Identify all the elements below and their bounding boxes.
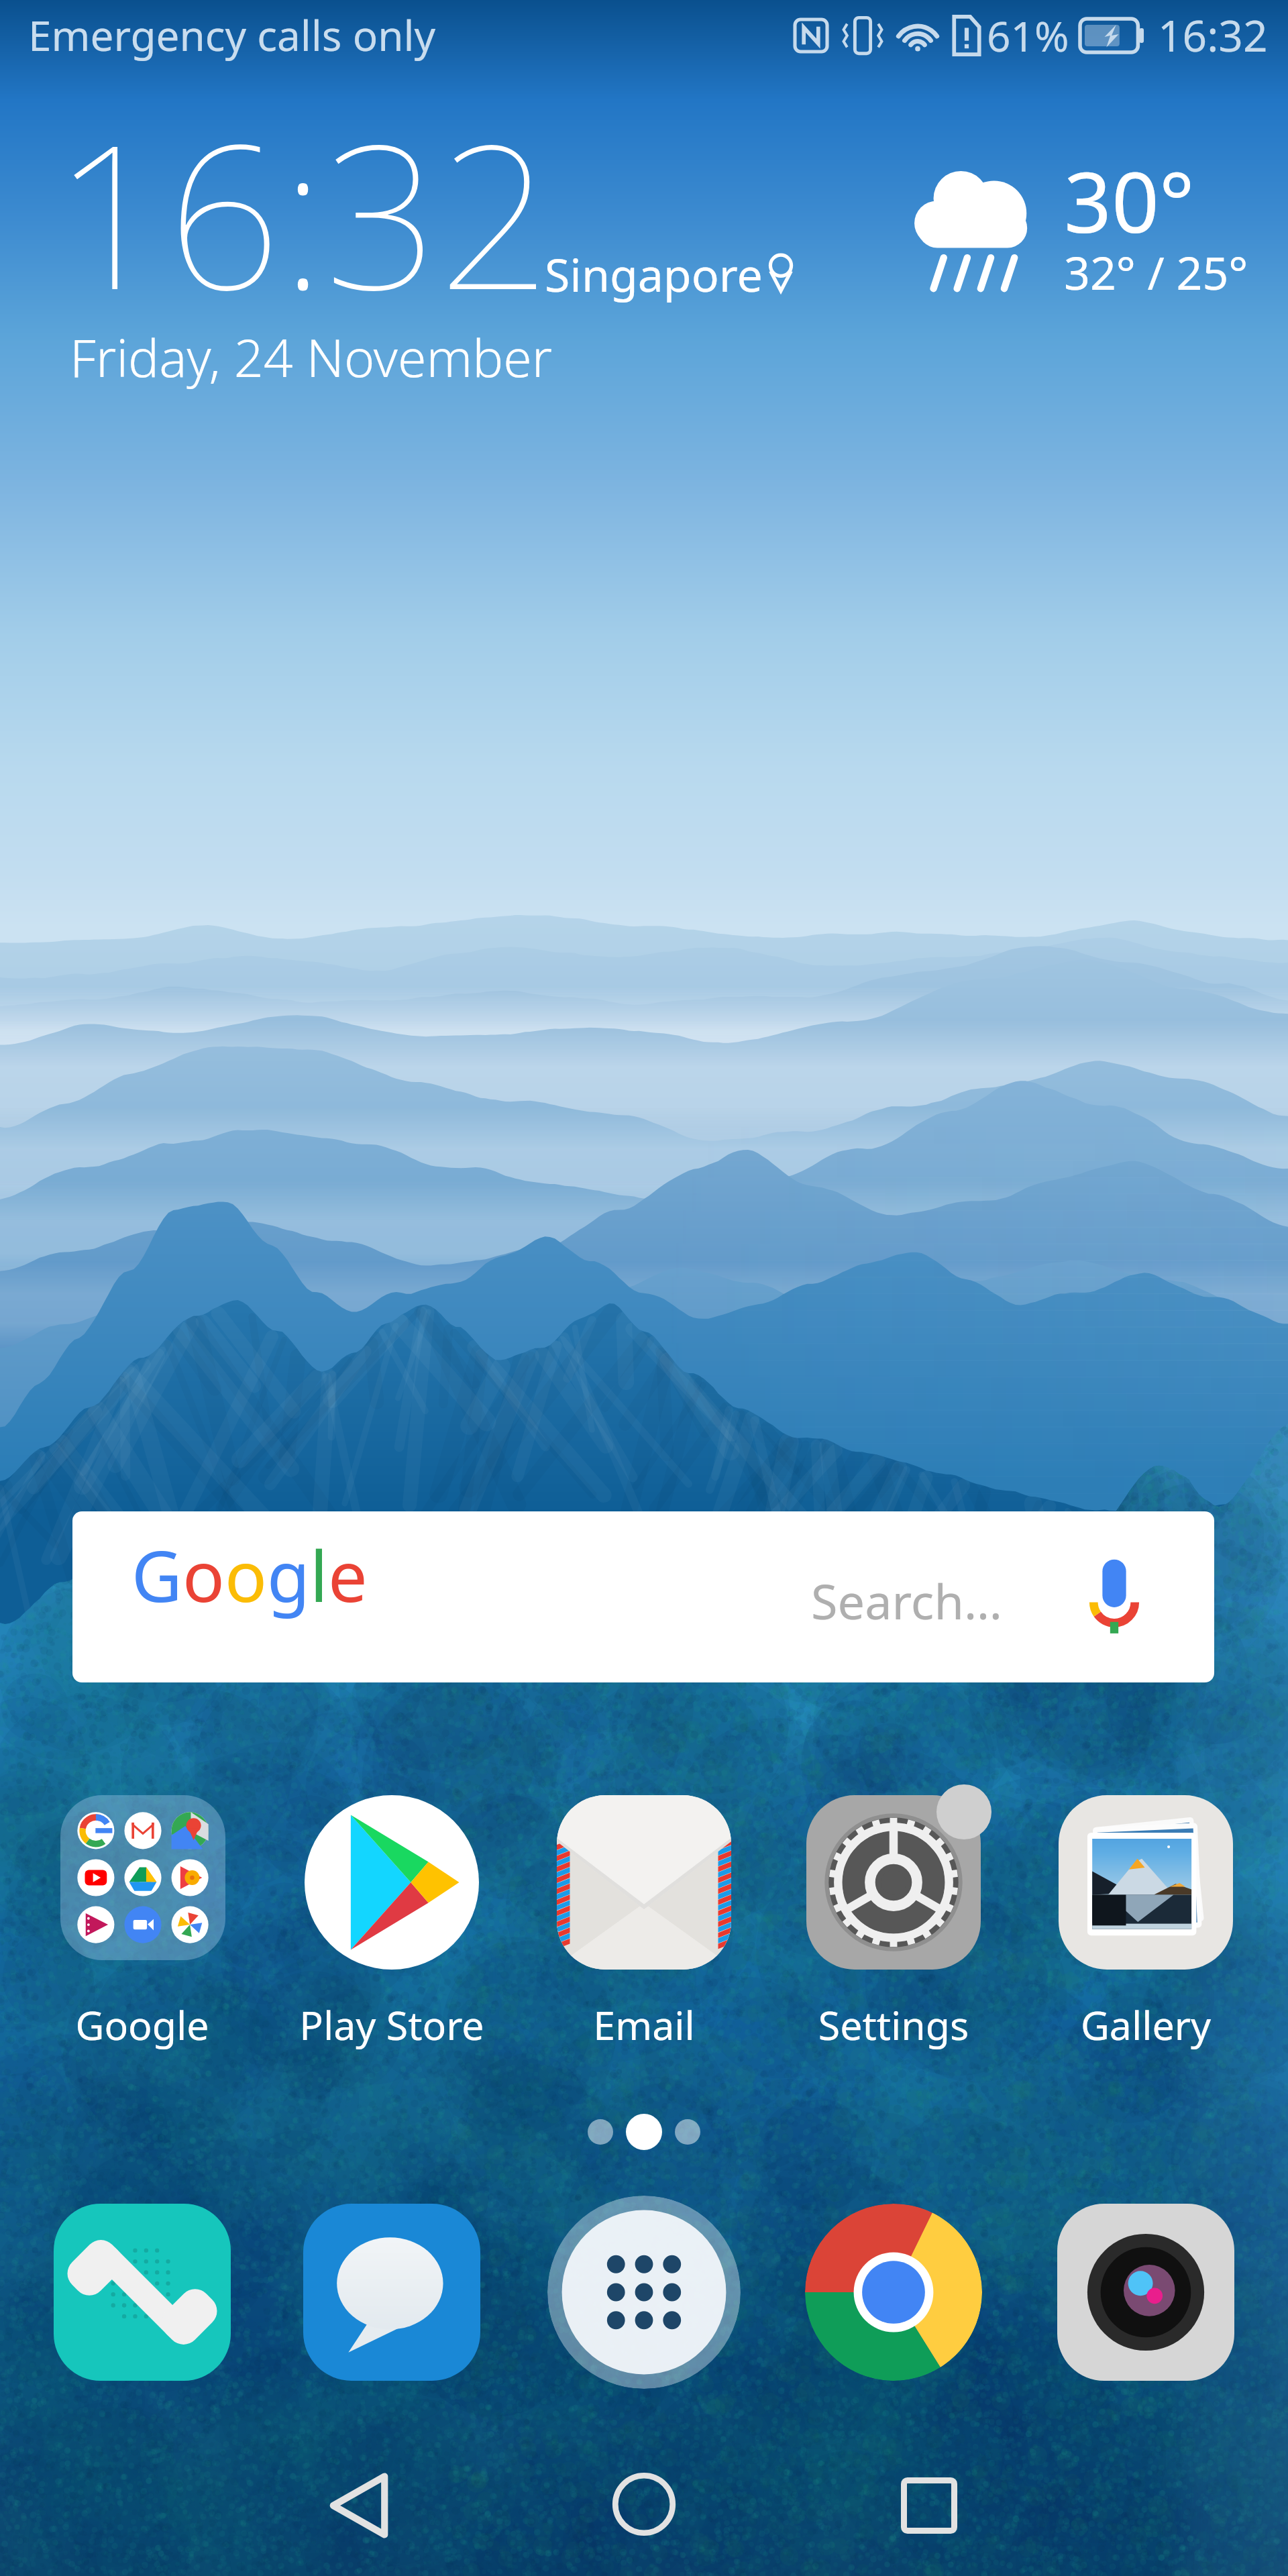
button[interactable] <box>305 1795 479 1970</box>
staticText: 16:32 <box>1158 6 1268 64</box>
staticText: e <box>328 1527 368 1623</box>
staticText: 32° / 25° <box>1064 241 1248 303</box>
staticText: Google <box>8 1998 276 2051</box>
staticText: Settings <box>759 1998 1028 2051</box>
button[interactable]: Back <box>309 2455 409 2556</box>
button[interactable] <box>54 2204 231 2381</box>
button[interactable]: Voice search <box>1087 1558 1142 1635</box>
staticText: o <box>225 1527 267 1623</box>
staticText: g <box>267 1527 310 1623</box>
staticText: 16:32 <box>54 76 552 348</box>
button[interactable] <box>557 1795 731 1970</box>
staticText: Play Store <box>258 1998 526 2051</box>
staticText: 61% <box>987 7 1069 64</box>
staticText: 30° <box>1064 144 1195 257</box>
button[interactable]: G <box>72 1511 1214 1682</box>
staticText: Singapore <box>545 243 763 305</box>
button[interactable]: Recent apps <box>879 2455 979 2556</box>
button[interactable]: Chrome <box>805 2204 982 2381</box>
staticText: Friday, 24 November <box>70 322 553 392</box>
button[interactable] <box>1059 1795 1233 1970</box>
button[interactable] <box>806 1795 981 1970</box>
staticText: Emergency calls only <box>28 7 436 63</box>
staticText: Search… <box>811 1568 1002 1633</box>
button[interactable]: Home <box>594 2454 694 2555</box>
staticText: G <box>131 1527 182 1623</box>
staticText: o <box>182 1527 225 1623</box>
button[interactable] <box>303 2204 480 2381</box>
button[interactable]: Camera <box>1057 2204 1234 2381</box>
staticText: l <box>310 1527 328 1623</box>
button[interactable]: Apps <box>547 2196 741 2389</box>
staticText: Gallery <box>1012 1998 1280 2051</box>
staticText: Email <box>510 1998 778 2051</box>
button[interactable] <box>60 1795 225 1960</box>
